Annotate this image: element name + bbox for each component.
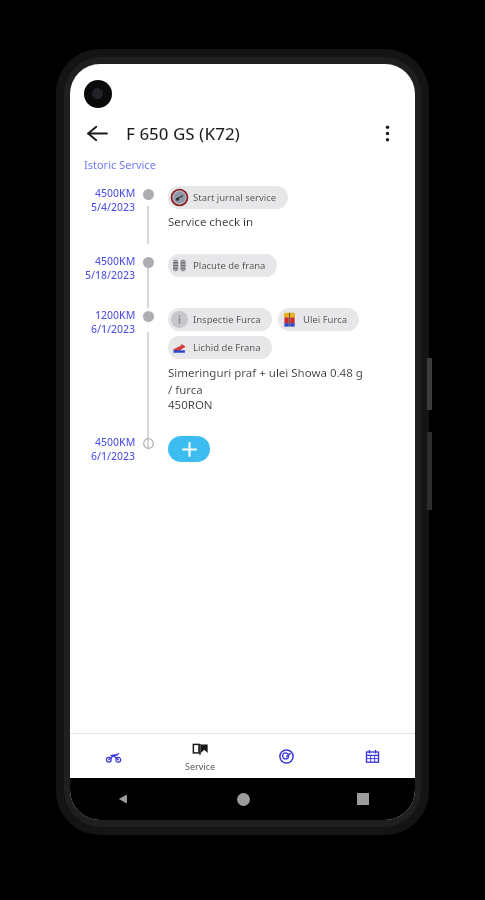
button[interactable]: Motorcycle (70, 734, 157, 778)
staticText: 6/1/2023 (91, 322, 136, 336)
button[interactable]: More options (367, 113, 407, 153)
button[interactable]: Calendar (329, 734, 415, 778)
staticText: 4500KM (95, 186, 136, 200)
button[interactable]: Add service entry (168, 436, 210, 462)
button[interactable]: Inspectie Furca (168, 308, 272, 331)
staticText: 5/4/2023 (91, 200, 136, 214)
staticText: Service (185, 760, 216, 772)
staticText: Service check in (168, 214, 254, 230)
staticText: 6/1/2023 (91, 449, 136, 463)
staticText: Ulei Furca (303, 313, 348, 326)
staticText: 1200KM (95, 308, 136, 322)
staticText: 450RON (168, 397, 213, 413)
staticText: F 650 GS (K72) (126, 122, 240, 145)
staticText: 5/18/2023 (85, 268, 136, 282)
button[interactable]: Lichid de Frana (168, 336, 272, 359)
button[interactable]: Stats (243, 734, 329, 778)
staticText: 4500KM (95, 435, 136, 449)
button[interactable]: Placute de frana (168, 254, 277, 277)
staticText: Istoric Service (84, 157, 156, 172)
button[interactable]: Start jurnal service (168, 186, 288, 209)
staticText: Start jurnal service (193, 191, 277, 204)
button[interactable]: Service (157, 734, 243, 778)
button[interactable]: Istoric Service (84, 157, 156, 172)
staticText: Lichid de Frana (193, 341, 261, 354)
staticText: Inspectie Furca (193, 313, 261, 326)
button[interactable]: Back (77, 113, 117, 153)
staticText: Simeringuri praf + ulei Showa 0.48 g / f… (168, 365, 364, 397)
staticText: 4500KM (95, 254, 136, 268)
staticText: Placute de frana (193, 259, 266, 272)
button[interactable]: Ulei Furca (278, 308, 359, 331)
